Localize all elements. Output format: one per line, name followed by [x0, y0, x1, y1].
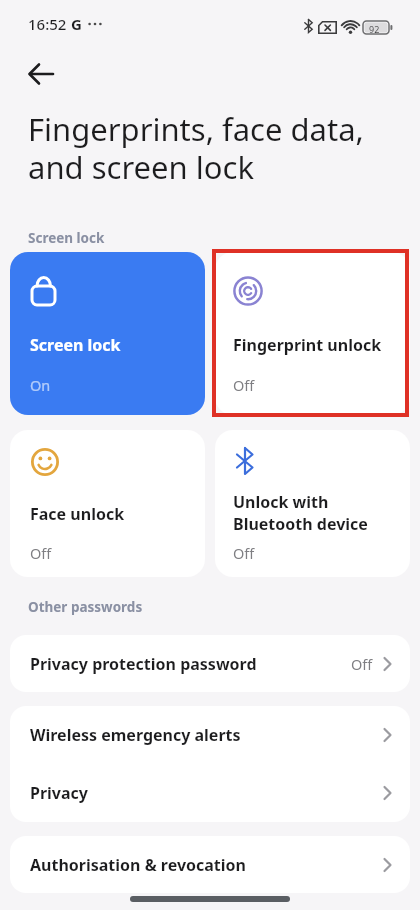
- staticText: Fingerprint unlock: [233, 334, 382, 356]
- staticText: Fingerprints, face data, and screen lock: [28, 108, 364, 188]
- button[interactable]: [22, 56, 58, 92]
- button[interactable]: Wireless emergency alerts: [10, 706, 410, 764]
- button[interactable]: Unlock with Bluetooth device: [215, 430, 410, 577]
- staticText: On: [30, 375, 51, 395]
- button[interactable]: Screen lock: [10, 252, 205, 415]
- button[interactable]: Authorisation & revocation: [10, 836, 410, 893]
- staticText: Unlock with Bluetooth device: [233, 491, 368, 535]
- button[interactable]: Face unlock: [10, 430, 205, 577]
- staticText: Off: [233, 543, 255, 563]
- staticText: Other passwords: [28, 598, 143, 616]
- staticText: Face unlock: [30, 503, 125, 525]
- staticText: Privacy protection password: [30, 653, 257, 675]
- staticText: Off: [233, 375, 255, 395]
- staticText: G: [71, 14, 82, 34]
- staticText: Off: [351, 654, 373, 674]
- button[interactable]: Privacy: [10, 764, 410, 822]
- button[interactable]: Fingerprint unlock: [215, 252, 410, 415]
- staticText: Screen lock: [28, 229, 105, 247]
- staticText: Wireless emergency alerts: [30, 724, 241, 746]
- staticText: Authorisation & revocation: [30, 854, 246, 876]
- staticText: 92: [369, 23, 380, 35]
- staticText: Screen lock: [30, 334, 121, 356]
- staticText: Off: [30, 543, 52, 563]
- staticText: 16:52: [28, 14, 67, 34]
- button[interactable]: Privacy protection password: [10, 635, 410, 692]
- staticText: Privacy: [30, 782, 88, 804]
